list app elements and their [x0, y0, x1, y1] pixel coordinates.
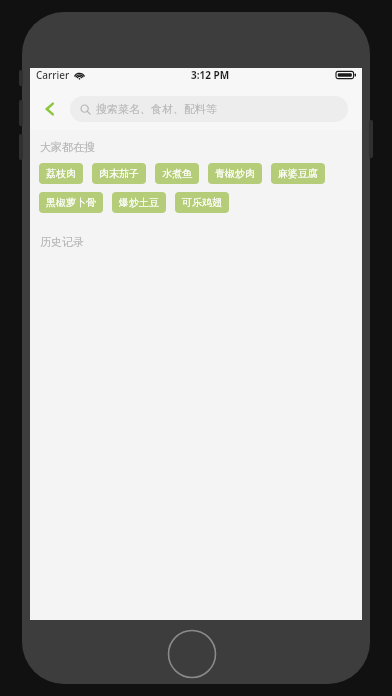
staticText: 爆炒土豆: [119, 196, 159, 209]
button[interactable]: 搜索菜名、食材、配料等: [70, 96, 348, 122]
staticText: 黑椒萝卜骨: [46, 196, 96, 209]
staticText: 3:12 PM: [191, 68, 230, 82]
staticText: 可乐鸡翅: [182, 196, 222, 209]
button[interactable]: Home: [167, 629, 217, 679]
staticText: 搜索菜名、食材、配料等: [96, 102, 217, 116]
button[interactable]: 麻婆豆腐: [271, 163, 325, 184]
staticText: 水煮鱼: [162, 167, 192, 180]
staticText: Carrier: [36, 68, 70, 82]
staticText: 大家都在搜: [40, 140, 95, 154]
button[interactable]: 青椒炒肉: [208, 163, 262, 184]
staticText: 历史记录: [40, 235, 84, 249]
staticText: 肉末茄子: [99, 167, 139, 180]
staticText: 青椒炒肉: [215, 167, 255, 180]
button[interactable]: 水煮鱼: [155, 163, 199, 184]
staticText: 麻婆豆腐: [278, 167, 318, 180]
button[interactable]: 肉末茄子: [92, 163, 146, 184]
button[interactable]: 爆炒土豆: [112, 192, 166, 213]
button[interactable]: 可乐鸡翅: [175, 192, 229, 213]
button[interactable]: 荔枝肉: [39, 163, 83, 184]
button[interactable]: 黑椒萝卜骨: [39, 192, 103, 213]
button[interactable]: Back: [30, 88, 70, 130]
staticText: 荔枝肉: [46, 167, 76, 180]
